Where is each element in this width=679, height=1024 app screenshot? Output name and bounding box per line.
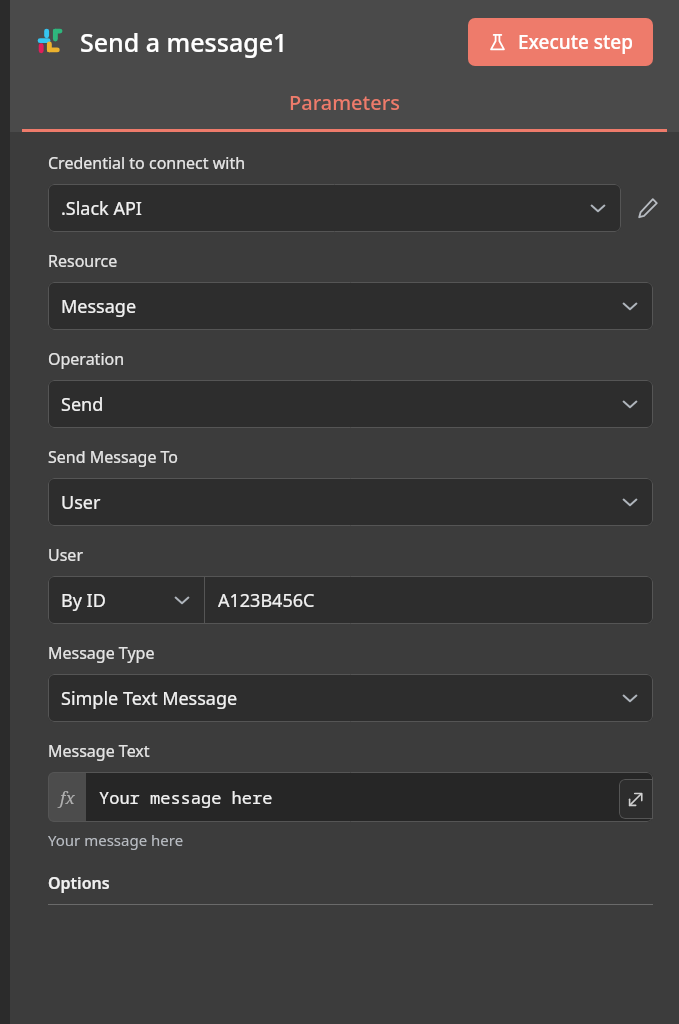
- staticText: User: [48, 544, 83, 566]
- button[interactable]: Your message here: [86, 772, 653, 822]
- staticText: Parameters: [289, 89, 400, 116]
- staticText: Credential to connect with: [48, 152, 246, 174]
- staticText: Send: [61, 392, 104, 417]
- button[interactable]: Simple Text Message: [48, 674, 653, 722]
- button[interactable]: Edit credential: [633, 193, 663, 223]
- staticText: Your message here: [99, 786, 273, 809]
- staticText: User: [61, 490, 101, 515]
- staticText: fx: [60, 786, 75, 809]
- staticText: A123B456C: [218, 588, 315, 613]
- staticText: Message Type: [48, 642, 155, 664]
- staticText: Simple Text Message: [61, 686, 238, 711]
- button[interactable]: Expression editor: [48, 772, 86, 822]
- staticText: Send Message To: [48, 446, 179, 468]
- staticText: Resource: [48, 250, 118, 272]
- staticText: Message Text: [48, 740, 150, 762]
- staticText: Options: [48, 872, 110, 894]
- button[interactable]: Message: [48, 282, 653, 330]
- button[interactable]: By ID: [48, 576, 204, 624]
- staticText: .Slack API: [61, 196, 142, 221]
- button[interactable]: .Slack API: [48, 184, 621, 232]
- button[interactable]: Execute step: [468, 18, 653, 66]
- staticText: Your message here: [48, 830, 184, 850]
- button[interactable]: Open editor: [619, 779, 653, 819]
- button[interactable]: Send: [48, 380, 653, 428]
- staticText: Message: [61, 294, 137, 319]
- button[interactable]: A123B456C: [205, 576, 653, 624]
- staticText: Operation: [48, 348, 125, 370]
- staticText: Send a message1: [80, 25, 288, 59]
- staticText: Execute step: [518, 29, 633, 55]
- button[interactable]: Parameters: [10, 85, 679, 132]
- button[interactable]: User: [48, 478, 653, 526]
- staticText: By ID: [61, 588, 106, 613]
